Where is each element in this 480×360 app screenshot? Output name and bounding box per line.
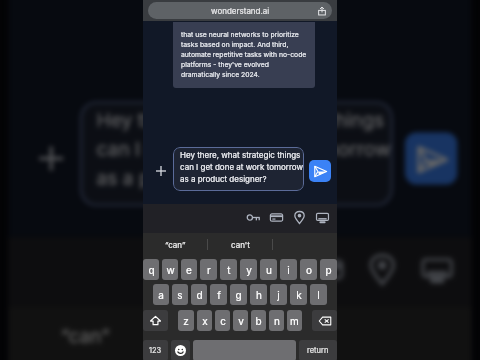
button[interactable]: 123 [143,340,168,360]
staticText: can't [231,240,250,250]
button[interactable]: x [197,310,212,331]
staticText: wonderstand.ai [211,6,270,16]
button[interactable]: t [220,259,237,280]
button[interactable]: p [320,259,337,280]
staticText: f [217,289,221,301]
staticText: l [317,289,320,301]
button[interactable] [319,307,472,360]
button[interactable]: y [240,259,257,280]
staticText: r [207,264,211,276]
button[interactable]: b [251,310,266,331]
button[interactable]: can't [208,233,272,256]
button[interactable]: “can” [143,233,207,256]
button[interactable]: n [269,310,284,331]
staticText: w [166,264,175,276]
staticText: x [202,315,208,327]
button[interactable]: that use neural networks to prioritize t… [173,22,315,88]
staticText: p [325,264,332,276]
staticText: q [148,264,155,276]
button[interactable]: z [178,310,194,331]
staticText: “can” [61,323,111,347]
button[interactable]: Add attachment [152,162,169,179]
staticText: m [290,315,299,327]
staticText: Hey there, what strategic things can I g… [180,150,303,184]
button[interactable]: Send [309,160,331,182]
button[interactable]: Payment [309,252,343,285]
button[interactable]: e [181,259,197,280]
button[interactable]: Add attachment [30,137,70,178]
staticText: e [186,264,192,276]
staticText: y [246,264,252,276]
button[interactable]: Hide keyboard [315,210,329,224]
button[interactable]: Location [292,210,306,224]
button[interactable]: Passwords [246,210,260,224]
staticText: d [196,289,203,301]
button[interactable]: h [250,284,267,305]
button[interactable]: u [260,259,277,280]
button[interactable]: l [310,284,327,305]
staticText: return [307,346,329,355]
button[interactable]: Hey there, what strategic things can I g… [80,101,393,206]
button[interactable]: Share [316,5,328,17]
staticText: 123 [149,346,162,355]
button[interactable]: r [200,259,217,280]
button[interactable]: q [143,259,159,280]
button[interactable]: Emoji [171,340,190,360]
button[interactable]: Send [405,132,457,185]
staticText: h [256,289,262,301]
button[interactable]: c [215,310,230,331]
staticText: a [158,289,164,301]
staticText: i [287,264,290,276]
staticText: Hey there, what strategic things can I g… [97,108,391,190]
button[interactable]: j [270,284,287,305]
button[interactable]: Passwords [254,252,288,285]
staticText: v [238,315,244,327]
button[interactable]: i [280,259,297,280]
button[interactable]: “can” [8,307,161,360]
staticText: “can” [165,240,186,250]
staticText: that use neural networks to prioritize t… [181,30,307,79]
button[interactable]: Payment [269,210,283,224]
button[interactable]: m [287,310,302,331]
button[interactable]: d [191,284,207,305]
button[interactable]: return [299,340,337,360]
button[interactable]: v [233,310,248,331]
staticText: s [177,289,183,301]
button[interactable]: Backspace [312,310,337,331]
staticText: j [277,289,280,301]
button[interactable]: k [290,284,307,305]
staticText: n [274,315,280,327]
staticText: z [183,315,189,327]
button[interactable]: a [153,284,169,305]
button[interactable]: s [172,284,188,305]
button[interactable]: g [230,284,247,305]
staticText: t [227,264,231,276]
staticText: k [296,289,302,301]
button[interactable]: wonderstand.ai [148,2,332,19]
button[interactable]: Location [364,252,398,285]
button[interactable]: Hey there, what strategic things can I g… [173,147,304,191]
button[interactable]: o [300,259,317,280]
button[interactable]: Hide keyboard [419,252,453,285]
staticText: can't [218,323,264,347]
staticText: c [220,315,226,327]
button[interactable]: can't [163,307,316,360]
staticText: g [235,289,242,301]
staticText: u [266,264,272,276]
button[interactable]: f [210,284,227,305]
staticText: b [255,315,262,327]
staticText: o [306,264,312,276]
button[interactable]: Shift [143,310,168,331]
button[interactable]: w [162,259,178,280]
